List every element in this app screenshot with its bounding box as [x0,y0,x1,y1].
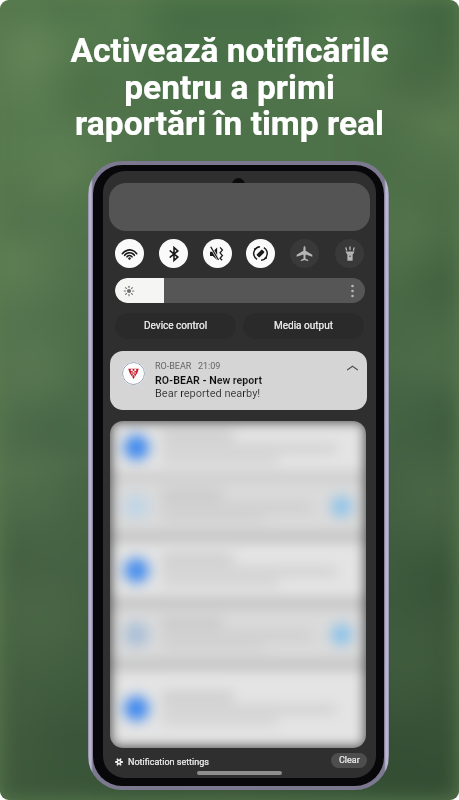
button[interactable] [110,669,366,748]
button[interactable]: Mute [203,239,232,268]
button[interactable]: Flashlight [335,239,364,268]
staticText: RO-BEAR [155,361,192,372]
button[interactable]: Device control [115,313,236,339]
button[interactable]: RO-BEAR [110,351,367,410]
button[interactable] [110,541,366,599]
staticText: Bear reported nearby! [155,387,261,400]
staticText: Activează notificările pentru a primi ra… [70,31,389,143]
button[interactable]: Bluetooth [159,239,188,268]
staticText: Clear [339,755,360,766]
button[interactable] [110,421,366,474]
button[interactable] [110,606,366,662]
staticText: Device control [144,320,208,332]
staticText: RO-BEAR - New report [155,374,262,386]
staticText: 21:09 [198,361,221,372]
button[interactable]: Auto rotate [246,239,275,268]
button[interactable]: Notification settings [115,752,235,772]
staticText: Media output [274,320,333,332]
button[interactable]: Media output [243,313,364,339]
button[interactable] [110,478,366,534]
other: Notification settings [115,758,123,766]
button[interactable]: Airplane mode [290,239,319,268]
button[interactable]: Clear [331,753,367,768]
staticText: Notification settings [128,757,209,768]
button[interactable]: Wi-Fi [115,239,144,268]
other: Collapse [347,363,358,374]
button[interactable]: Brightness [115,278,365,303]
